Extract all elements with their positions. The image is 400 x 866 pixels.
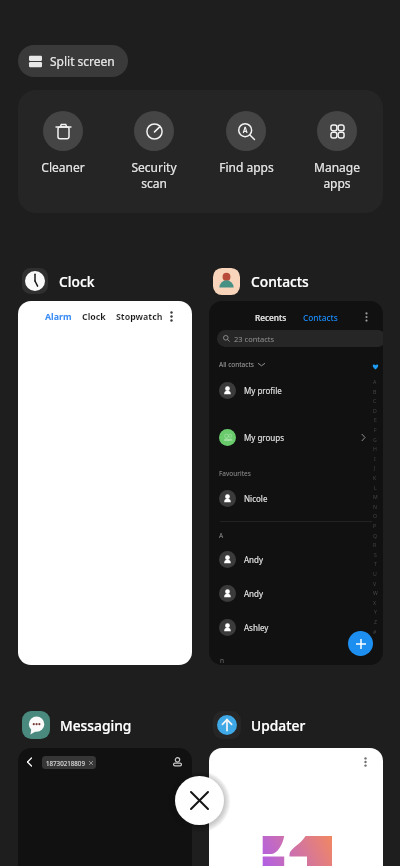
button[interactable]: Ashley <box>219 619 366 636</box>
staticText: P <box>373 522 377 529</box>
button[interactable]: Add contact <box>348 631 373 656</box>
staticText: G <box>373 436 377 443</box>
staticText: U <box>373 570 377 577</box>
staticText: B <box>373 388 377 395</box>
button[interactable]: My groups <box>219 429 366 446</box>
staticText: D <box>373 407 377 414</box>
button[interactable]: Messaging <box>22 711 132 739</box>
staticText: C <box>373 397 377 404</box>
staticText: O <box>373 512 378 519</box>
staticText: Clock <box>59 272 95 291</box>
staticText: Contacts <box>303 312 338 323</box>
staticText: Ashley <box>244 622 269 633</box>
button[interactable]: Manage apps <box>295 90 379 212</box>
staticText: 18730218809 <box>46 759 85 767</box>
staticText: Updater <box>251 716 306 735</box>
staticText: Recents <box>255 312 287 323</box>
staticText: Contacts <box>251 272 309 291</box>
staticText: J <box>374 464 376 471</box>
button[interactable]: 23 contacts <box>217 330 383 347</box>
staticText: n <box>220 656 225 665</box>
staticText: Nicole <box>244 493 268 504</box>
staticText: H <box>373 445 377 452</box>
button[interactable]: Updater <box>213 711 306 739</box>
staticText: Andy <box>244 554 264 565</box>
staticText: V <box>373 580 377 587</box>
staticText: T <box>374 560 377 567</box>
staticText: Andy <box>244 588 264 599</box>
staticText: Favourites <box>219 469 251 478</box>
staticText: Security scan <box>131 159 177 191</box>
staticText: All contacts <box>219 360 254 369</box>
button[interactable]: My profile <box>219 382 366 399</box>
button[interactable]: Alarm <box>18 301 192 665</box>
staticText: Manage apps <box>314 159 360 191</box>
staticText: Z <box>374 618 377 625</box>
staticText: My profile <box>244 385 282 396</box>
staticText: Cleaner <box>41 159 85 175</box>
staticText: Split screen <box>50 53 115 69</box>
button[interactable]: Andy <box>219 585 366 602</box>
button[interactable]: Split screen <box>18 45 128 77</box>
button[interactable]: Nicole <box>219 490 366 507</box>
staticText: A <box>373 378 377 385</box>
staticText: X <box>373 599 377 606</box>
staticText: F <box>374 426 377 433</box>
staticText: Alarm <box>45 311 72 323</box>
staticText: Y <box>374 608 377 615</box>
staticText: R <box>373 541 377 548</box>
button[interactable]: Cleaner <box>21 90 105 212</box>
staticText: L <box>374 484 377 491</box>
button[interactable]: Clock <box>22 268 95 294</box>
button[interactable]: Close all <box>175 776 224 825</box>
staticText: K <box>373 474 377 481</box>
button[interactable]: Andy <box>219 551 366 568</box>
button[interactable]: Security scan <box>112 90 196 212</box>
button[interactable]: Contacts <box>213 268 309 295</box>
button[interactable]: All contacts <box>219 360 265 369</box>
staticText: Messaging <box>60 716 132 735</box>
button[interactable]: 18730218809 <box>42 756 96 769</box>
staticText: Q <box>373 532 378 539</box>
staticText: My groups <box>244 432 285 443</box>
button[interactable]: Recents <box>209 301 383 665</box>
staticText: Stopwatch <box>116 311 163 323</box>
staticText: M <box>373 493 378 500</box>
staticText: # <box>373 628 377 635</box>
staticText: W <box>373 589 378 596</box>
staticText: A <box>219 531 224 540</box>
staticText: Find apps <box>219 159 274 175</box>
button[interactable]: Find apps <box>204 90 288 212</box>
button[interactable]: 18730218809 <box>18 748 192 866</box>
staticText: N <box>373 503 377 510</box>
staticText: S <box>374 551 377 558</box>
staticText: E <box>374 416 377 423</box>
staticText: 23 contacts <box>234 334 275 344</box>
staticText: Clock <box>82 311 106 323</box>
button[interactable] <box>209 748 383 866</box>
staticText: I <box>374 455 376 462</box>
